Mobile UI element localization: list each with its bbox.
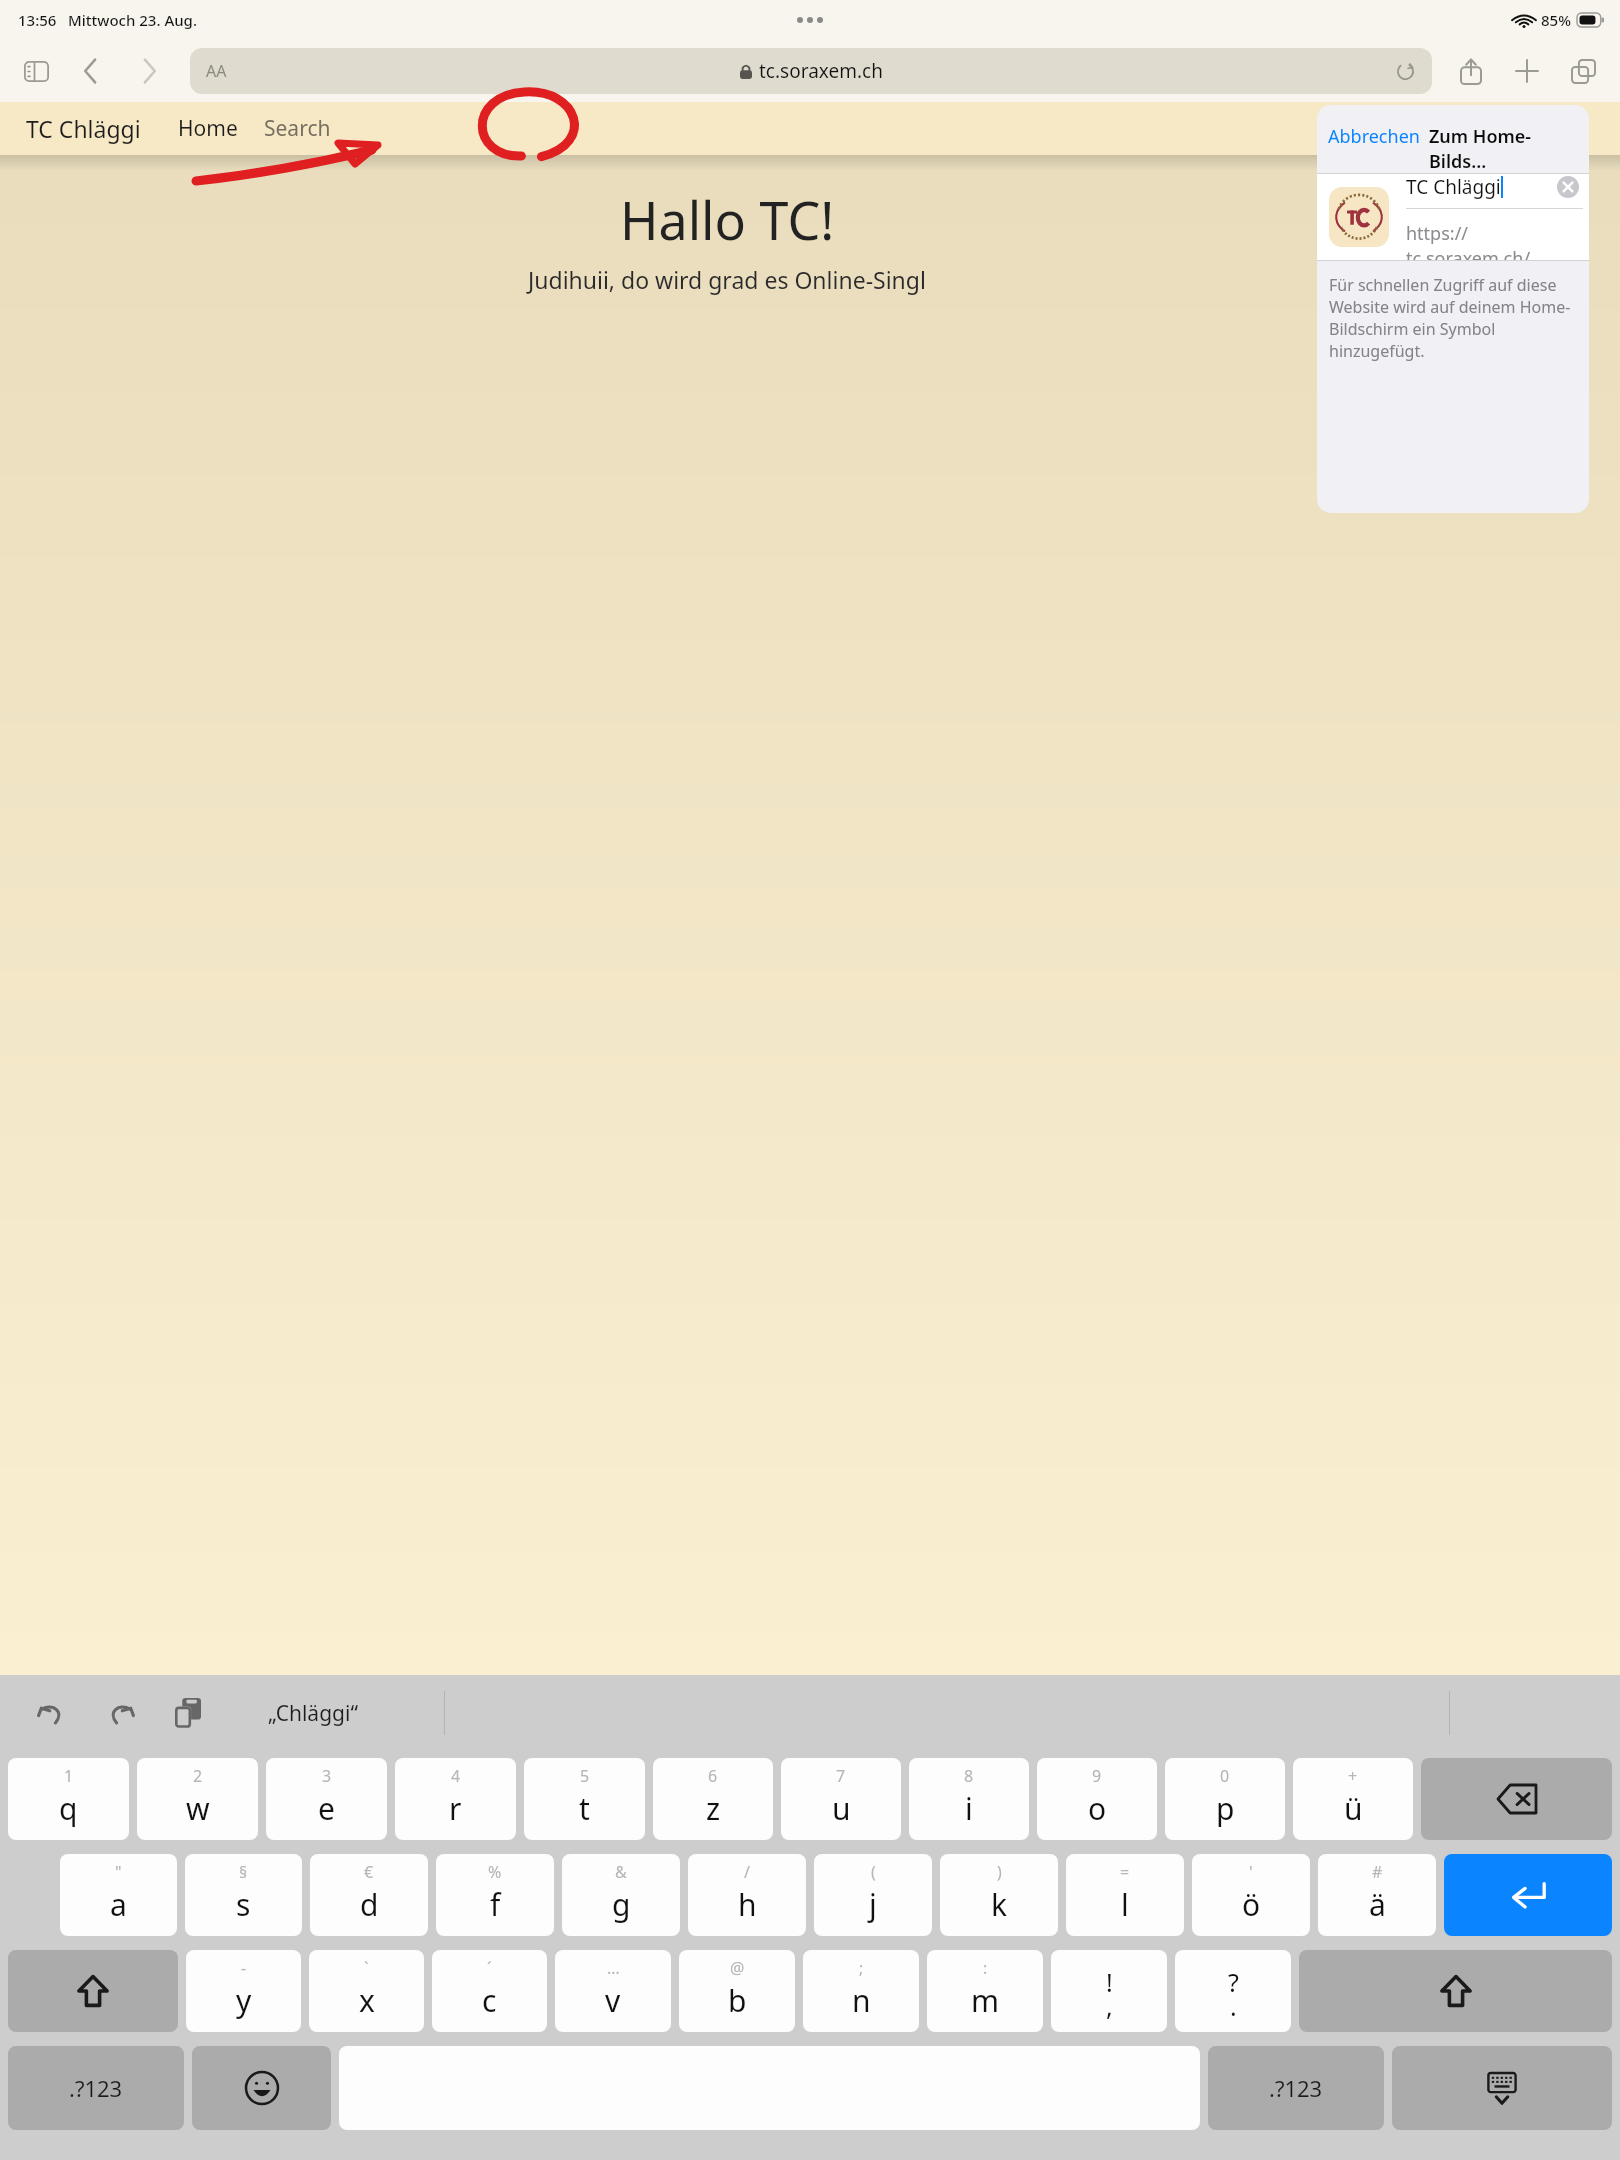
staticText: k (991, 1884, 1008, 1925)
button[interactable]: ` (309, 1950, 424, 2032)
button[interactable]: Forward (128, 49, 172, 93)
staticText: Mittwoch 23. Aug. (68, 10, 198, 30)
button[interactable]: AA (190, 48, 1432, 94)
staticText: 5 (580, 1765, 590, 1787)
button[interactable]: .?123 (8, 2046, 184, 2130)
button[interactable]: ' (1192, 1854, 1310, 1936)
button[interactable]: Back (68, 49, 112, 93)
staticText: ü (1344, 1788, 1363, 1829)
button[interactable]: 8 (909, 1758, 1029, 1840)
button[interactable]: Undo (30, 1691, 74, 1735)
staticText: … (607, 1957, 620, 1979)
button[interactable] (1299, 1950, 1612, 2032)
staticText: 3 (322, 1765, 332, 1787)
staticText: .?123 (69, 2073, 123, 2103)
staticText: ´ (487, 1957, 492, 1979)
button[interactable]: Redo (98, 1691, 142, 1735)
button[interactable]: & (562, 1854, 680, 1936)
staticText: i (965, 1788, 973, 1829)
button[interactable]: … (555, 1950, 671, 2032)
staticText: ; (859, 1957, 864, 1979)
button[interactable]: € (310, 1854, 428, 1936)
button[interactable] (1392, 2046, 1612, 2130)
button[interactable]: 7 (781, 1758, 901, 1840)
button[interactable] (1421, 1758, 1612, 1840)
button[interactable]: 3 (266, 1758, 387, 1840)
button[interactable]: 0 (1165, 1758, 1285, 1840)
staticText: n (852, 1980, 871, 2021)
button[interactable]: Share (1448, 48, 1494, 94)
staticText: 85% (1541, 10, 1571, 30)
staticText: Für schnellen Zugriff auf diese Website … (1329, 274, 1577, 362)
staticText: ` (364, 1957, 369, 1979)
button[interactable]: TC Chläggi (26, 113, 141, 144)
button[interactable]: Tabs (1560, 48, 1606, 94)
staticText: 0 (1220, 1765, 1230, 1787)
staticText: b (728, 1980, 747, 2021)
button[interactable] (1444, 1854, 1612, 1936)
button[interactable] (192, 2046, 331, 2130)
button[interactable]: 2 (137, 1758, 258, 1840)
button[interactable]: - (186, 1950, 301, 2032)
staticText: c (482, 1980, 497, 2021)
staticText: w (186, 1788, 210, 1829)
button[interactable]: Home (178, 114, 238, 143)
staticText: f (490, 1884, 501, 1925)
button[interactable]: / (688, 1854, 806, 1936)
staticText: o (1088, 1788, 1107, 1829)
button[interactable]: Clear (1557, 176, 1579, 198)
button[interactable]: Reload (1392, 58, 1418, 84)
button[interactable] (8, 1950, 178, 2032)
staticText: u (832, 1788, 851, 1829)
staticText: 8 (964, 1765, 974, 1787)
button[interactable]: = (1066, 1854, 1184, 1936)
button[interactable]: " (60, 1854, 177, 1936)
button[interactable]: @ (679, 1950, 795, 2032)
staticText: m (971, 1980, 1000, 2021)
staticText: # (1372, 1861, 1383, 1883)
button[interactable]: Sidebar (14, 49, 58, 93)
staticText: . (1230, 1989, 1237, 2023)
button[interactable]: ( (814, 1854, 932, 1936)
button[interactable]: „Chläggi“ (268, 1699, 358, 1728)
staticText: : (983, 1957, 988, 1979)
button[interactable]: 5 (524, 1758, 645, 1840)
button[interactable]: 9 (1037, 1758, 1157, 1840)
button[interactable]: 6 (653, 1758, 773, 1840)
staticText: p (1216, 1788, 1235, 1829)
button[interactable]: ? (1175, 1950, 1291, 2032)
staticText: h (738, 1884, 757, 1925)
button[interactable]: : (927, 1950, 1043, 2032)
staticText: Judihuii, do wird grad es Online-Singl (528, 264, 926, 295)
button[interactable]: .?123 (1208, 2046, 1384, 2130)
staticText: 4 (451, 1765, 461, 1787)
button[interactable]: Abbrechen (1328, 124, 1420, 149)
button[interactable]: 1 (8, 1758, 129, 1840)
button[interactable]: § (185, 1854, 302, 1936)
button[interactable]: Paste (166, 1691, 210, 1735)
button[interactable]: + (1293, 1758, 1413, 1840)
button[interactable]: ! (1051, 1950, 1167, 2032)
staticText: y (236, 1980, 252, 2021)
button[interactable]: New Tab (1504, 48, 1550, 94)
staticText: AA (206, 60, 227, 82)
staticText: ! (1106, 1965, 1113, 1999)
staticText: ö (1242, 1884, 1261, 1925)
staticText: 13:56 (18, 10, 57, 30)
button[interactable]: ; (803, 1950, 919, 2032)
button[interactable]: % (436, 1854, 554, 1936)
staticText: Zum Home-Bilds... (1429, 124, 1578, 173)
button[interactable]: ´ (432, 1950, 547, 2032)
staticText: Hallo TC! (620, 184, 835, 255)
staticText: z (706, 1788, 721, 1829)
button[interactable]: ) (940, 1854, 1058, 1936)
button[interactable]: Search (264, 114, 331, 143)
staticText: .?123 (1269, 2073, 1323, 2103)
staticText: , (1106, 1989, 1113, 2023)
staticText: % (488, 1861, 502, 1883)
button[interactable]: # (1318, 1854, 1436, 1936)
button[interactable]: 4 (395, 1758, 516, 1840)
staticText: l (1121, 1884, 1129, 1925)
staticText: 1 (64, 1765, 74, 1787)
